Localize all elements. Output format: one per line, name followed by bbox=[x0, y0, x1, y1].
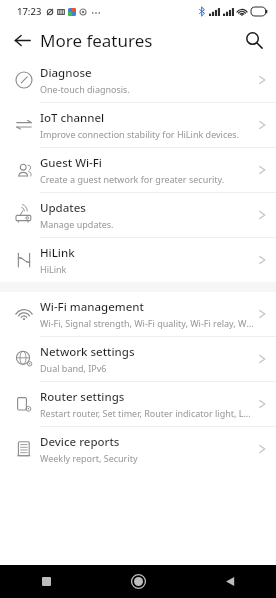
staticText: Router settings bbox=[40, 389, 125, 405]
staticText: Wi-Fi management bbox=[40, 299, 144, 315]
button[interactable]: Updates bbox=[0, 193, 276, 238]
staticText: Updates bbox=[40, 200, 86, 216]
button[interactable]: Network settings bbox=[0, 337, 276, 382]
button[interactable]: Router settings bbox=[0, 382, 276, 427]
button[interactable]: Wi-Fi management bbox=[0, 292, 276, 337]
staticText: One-touch diagnosis. bbox=[40, 83, 130, 95]
staticText: Restart router, Set timer, Router indica… bbox=[40, 407, 255, 419]
button[interactable]: Home bbox=[92, 565, 184, 598]
staticText: Network settings bbox=[40, 344, 135, 360]
staticText: Guest Wi-Fi bbox=[40, 155, 102, 171]
staticText: Manage updates. bbox=[40, 218, 114, 230]
staticText: IoT channel bbox=[40, 110, 105, 126]
staticText: Diagnose bbox=[40, 65, 92, 81]
button[interactable]: IoT channel bbox=[0, 103, 276, 148]
staticText: Improve connection stability for HiLink … bbox=[40, 128, 240, 140]
staticText: Create a guest network for greater secur… bbox=[40, 173, 225, 185]
staticText: Dual band, IPv6 bbox=[40, 362, 107, 374]
button[interactable]: Recent apps bbox=[0, 565, 92, 598]
staticText: Device reports bbox=[40, 434, 120, 450]
button[interactable]: Back bbox=[184, 565, 276, 598]
staticText: Wi-Fi, Signal strength, Wi-Fi quality, W… bbox=[40, 317, 255, 329]
button[interactable]: Guest Wi-Fi bbox=[0, 148, 276, 193]
button[interactable]: Device reports bbox=[0, 427, 276, 471]
staticText: Weekly report, Security bbox=[40, 452, 138, 464]
staticText: HiLink bbox=[40, 245, 75, 261]
staticText: HiLink bbox=[40, 263, 67, 275]
staticText: More features bbox=[40, 29, 153, 52]
button[interactable]: HiLink bbox=[0, 238, 276, 282]
button[interactable]: Back bbox=[8, 26, 36, 54]
staticText: 17:23 bbox=[17, 5, 42, 18]
button[interactable]: Search bbox=[239, 25, 269, 55]
button[interactable]: Diagnose bbox=[0, 58, 276, 103]
